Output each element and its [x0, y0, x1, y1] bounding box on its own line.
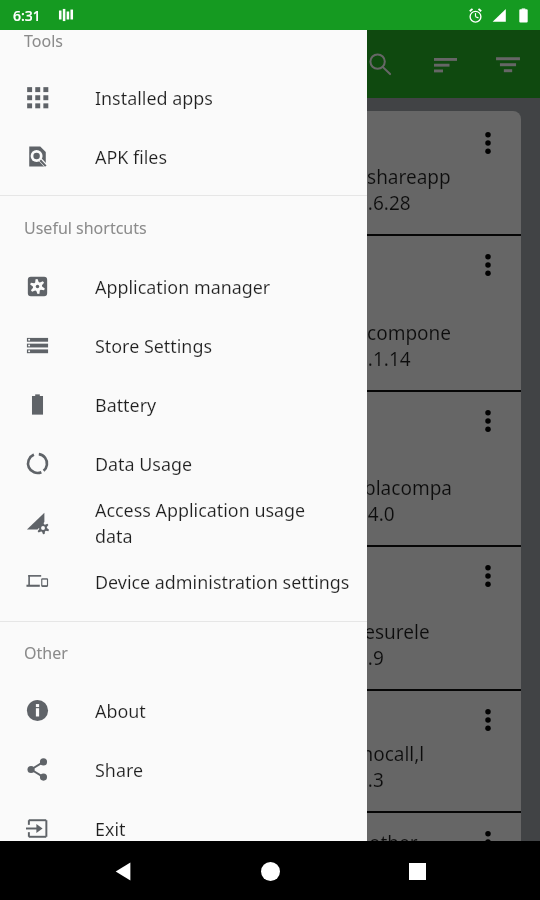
button[interactable]: Data Usage: [0, 434, 367, 493]
button[interactable]: Access Application usage data: [0, 493, 367, 552]
staticText: Store Settings: [95, 334, 352, 358]
button[interactable]: Mesurele compania masuri: [19, 547, 521, 689]
button[interactable]: Home: [247, 848, 293, 894]
staticText: App Size : 310.0 MB,Version name : 2.4.0: [37, 501, 395, 527]
staticText: Whocall mobile callerin: [37, 697, 320, 732]
button[interactable]: Another mobile applica: [19, 813, 521, 900]
staticText: 6:31: [13, 6, 41, 25]
button[interactable]: More options: [467, 244, 509, 286]
staticText: Package name : com.android.mob.whocall,l: [37, 741, 425, 767]
button[interactable]: About: [0, 681, 367, 740]
staticText: Package name : com.android.mobile.sharea…: [37, 164, 451, 190]
button[interactable]: Device administration settings: [0, 552, 367, 611]
staticText: Another mobile applica: [37, 819, 321, 854]
staticText: Share: [95, 758, 352, 782]
staticText: App Size : 22.0 MB,Version name : 3.0.1.…: [37, 346, 411, 372]
staticText: Tablacompa mobile datela: [37, 398, 358, 433]
staticText: Application manager: [95, 275, 352, 299]
button[interactable]: Recent apps: [394, 848, 440, 894]
button[interactable]: Search: [356, 40, 404, 88]
button[interactable]: Battery: [0, 375, 367, 434]
button[interactable]: More options: [467, 555, 509, 597]
staticText: Battery: [95, 393, 352, 417]
button[interactable]: Back: [101, 848, 147, 894]
staticText: Mesurele compania masuri: [37, 553, 369, 588]
staticText: App Size : 67.0 MB,Version name : 5.1.9: [37, 645, 384, 671]
staticText: Tools: [24, 30, 63, 50]
button[interactable]: Store Settings: [0, 316, 367, 375]
button[interactable]: Filter: [484, 40, 532, 88]
button[interactable]: More options: [467, 821, 509, 863]
button[interactable]: More options: [467, 699, 509, 741]
button[interactable]: Whocall mobile callerin: [19, 691, 521, 811]
staticText: Package name : com.android.mob.another: [37, 830, 418, 856]
button[interactable]: Sort: [421, 40, 469, 88]
staticText: Access Application usage data: [95, 498, 352, 548]
staticText: Useful shortcuts: [24, 217, 147, 237]
staticText: Data Usage: [95, 452, 352, 476]
staticText: Exit: [95, 817, 352, 841]
staticText: Other: [24, 642, 68, 662]
button[interactable]: More options: [467, 400, 509, 442]
button[interactable]: Application manager: [0, 257, 367, 316]
button[interactable]: Tablacompa mobile datela: [19, 392, 521, 545]
staticText: Package name : com.android.mob.mesurele: [37, 619, 430, 645]
button[interactable]: More options: [467, 122, 509, 164]
button[interactable]: Installed apps: [0, 68, 367, 127]
staticText: App Size : 45.0 MB,Version name : 1.2.6.…: [37, 190, 411, 216]
staticText: Installed apps: [95, 86, 352, 110]
button[interactable]: Someone mobile apps one: [19, 236, 521, 390]
staticText: APK files: [95, 145, 352, 169]
staticText: App Size : 12.0 MB,Version name : 1.0.3: [37, 767, 384, 793]
button[interactable]: Package name : com.android.mobile.sharea…: [19, 111, 521, 234]
staticText: App Size : 8.0 MB,Version name : 4.2.7: [37, 856, 373, 882]
staticText: About: [95, 699, 352, 723]
button[interactable]: APK files: [0, 127, 367, 186]
button[interactable]: Share: [0, 740, 367, 799]
button[interactable]: Exit: [0, 799, 367, 858]
staticText: Package name : com.android.mob.tablacomp…: [37, 475, 452, 501]
staticText: Package name : com.android.mobile.compon…: [37, 320, 452, 346]
staticText: Device administration settings: [95, 570, 352, 594]
